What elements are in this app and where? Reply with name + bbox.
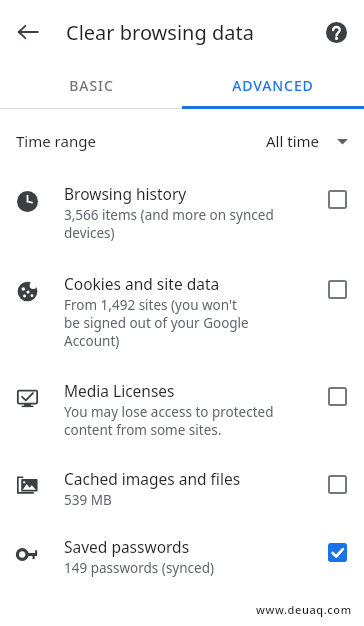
button[interactable]: ADVANCED	[182, 64, 364, 106]
staticText: Media Licenses	[64, 380, 175, 401]
button[interactable]: Cached images and files	[0, 457, 364, 525]
button[interactable]: Media Licenses	[0, 369, 364, 457]
staticText: ADVANCED	[232, 76, 314, 95]
staticText: Clear browsing data	[66, 19, 254, 46]
button[interactable]: Back	[8, 12, 48, 52]
button[interactable]: Cookies and site data	[328, 280, 347, 299]
button[interactable]: BASIC	[0, 64, 182, 106]
staticText: All time	[266, 131, 319, 151]
staticText: 3,566 items (and more on synced devices)	[64, 206, 274, 242]
button[interactable]: Media Licenses	[328, 387, 347, 406]
staticText: Saved passwords	[64, 536, 190, 557]
staticText: BASIC	[69, 76, 114, 95]
staticText: 539 MB	[64, 491, 112, 509]
staticText: www.deuaq.com	[256, 602, 352, 617]
staticText: You may lose access to protected content…	[64, 403, 274, 439]
staticText: 149 passwords (synced)	[64, 559, 215, 577]
button[interactable]: Saved passwords	[0, 525, 364, 593]
staticText: Cookies and site data	[64, 273, 220, 294]
button[interactable]: Browsing history	[328, 190, 347, 209]
staticText: Browsing history	[64, 183, 187, 204]
button[interactable]: Saved passwords	[328, 543, 347, 562]
button[interactable]: Help	[316, 12, 356, 52]
staticText: Time range	[16, 131, 96, 151]
button[interactable]: Cookies and site data	[0, 262, 364, 369]
button[interactable]: Time range	[0, 109, 364, 172]
button[interactable]: Browsing history	[0, 172, 364, 262]
staticText: Cached images and files	[64, 468, 241, 489]
staticText: From 1,492 sites (you won't be signed ou…	[64, 296, 249, 350]
button[interactable]: Cached images and files	[328, 475, 347, 494]
